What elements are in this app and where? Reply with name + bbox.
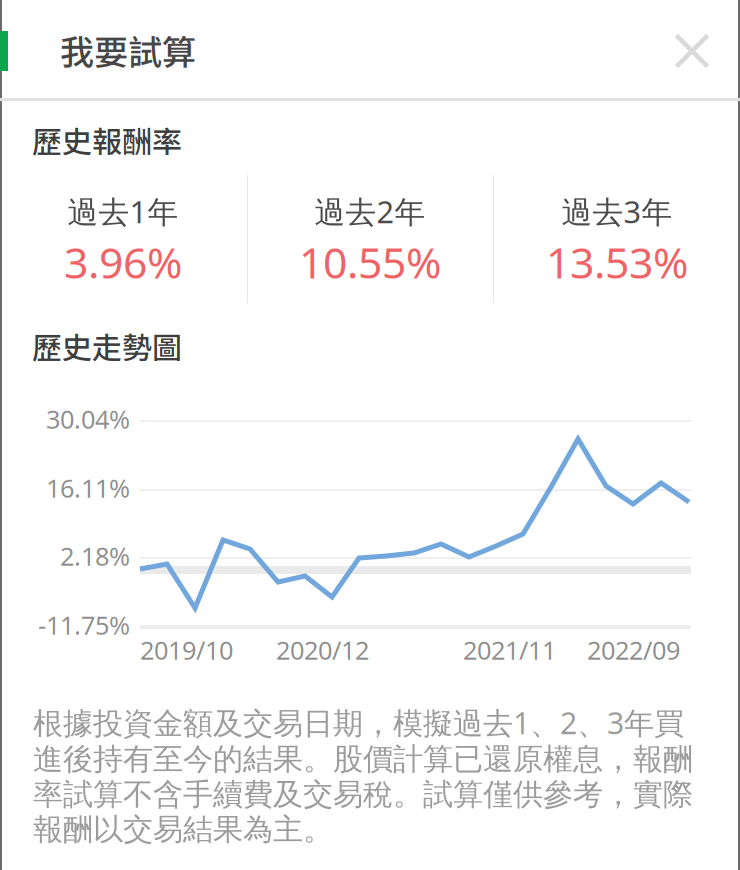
button[interactable]: Close — [650, 9, 734, 93]
staticText: 2020/12 — [276, 633, 369, 667]
staticText: 2019/10 — [140, 633, 233, 667]
staticText: 根據投資金額及交易日期，模擬過去1、2、3年買進後持有至今的結果。股價計算已還原… — [33, 702, 693, 848]
staticText: 我要試算 — [60, 25, 196, 75]
staticText: 過去1年 — [67, 191, 178, 232]
staticText: 歷史走勢圖 — [32, 324, 182, 368]
staticText: -11.75% — [38, 608, 130, 642]
staticText: 10.55% — [299, 234, 441, 290]
staticText: 2022/09 — [587, 633, 680, 667]
staticText: 過去2年 — [314, 191, 425, 232]
staticText: 歷史報酬率 — [32, 118, 182, 162]
staticText: 過去3年 — [561, 191, 672, 232]
staticText: 2021/11 — [463, 633, 556, 667]
staticText: 16.11% — [46, 471, 130, 505]
staticText: 2.18% — [60, 539, 130, 573]
staticText: 13.53% — [546, 234, 688, 290]
staticText: 30.04% — [46, 402, 130, 436]
staticText: 3.96% — [64, 234, 182, 290]
